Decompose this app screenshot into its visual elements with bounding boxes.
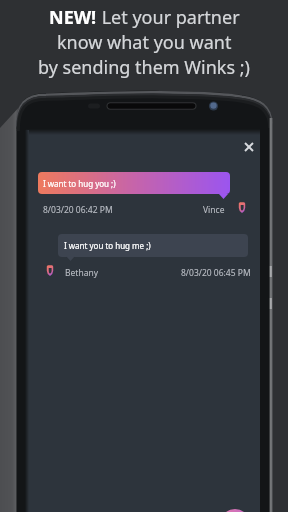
staticText: 8/03/20 06:42 PM <box>43 204 113 216</box>
staticText: know what you want <box>57 30 232 55</box>
button[interactable]: Close <box>236 134 262 160</box>
button[interactable]: I want to hug you ;) <box>38 172 230 194</box>
staticText: 8/03/20 06:45 PM <box>181 267 251 279</box>
staticText: Bethany <box>65 267 98 279</box>
staticText: I want to hug you ;) <box>43 178 116 189</box>
staticText: by sending them Winks ;) <box>38 55 250 80</box>
button[interactable]: I want you to hug me ;) <box>58 234 248 257</box>
button[interactable]: New message <box>220 509 250 512</box>
staticText: Vince <box>203 204 225 216</box>
staticText: NEW! <box>49 5 97 30</box>
staticText: I want you to hug me ;) <box>64 240 151 251</box>
staticText: Let your partner <box>97 5 240 30</box>
